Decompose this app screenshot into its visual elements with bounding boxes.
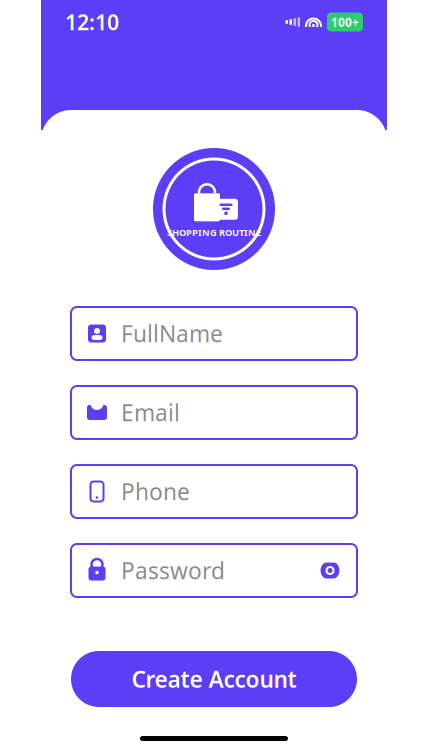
staticText: SHOPPING ROUTINE <box>167 226 261 239</box>
staticText: Email <box>121 397 180 427</box>
button[interactable]: Password <box>71 544 357 597</box>
staticText: Phone <box>121 476 190 506</box>
button[interactable]: Create Account <box>71 651 357 707</box>
staticText: Password <box>121 555 225 585</box>
staticText: 12:10 <box>65 8 119 36</box>
staticText: FullName <box>121 318 223 348</box>
staticText: Create Account <box>131 664 296 694</box>
staticText: 100+ <box>331 14 359 30</box>
button[interactable]: Email <box>71 386 357 439</box>
button[interactable]: Phone <box>71 465 357 518</box>
button[interactable]: FullName <box>71 307 357 360</box>
